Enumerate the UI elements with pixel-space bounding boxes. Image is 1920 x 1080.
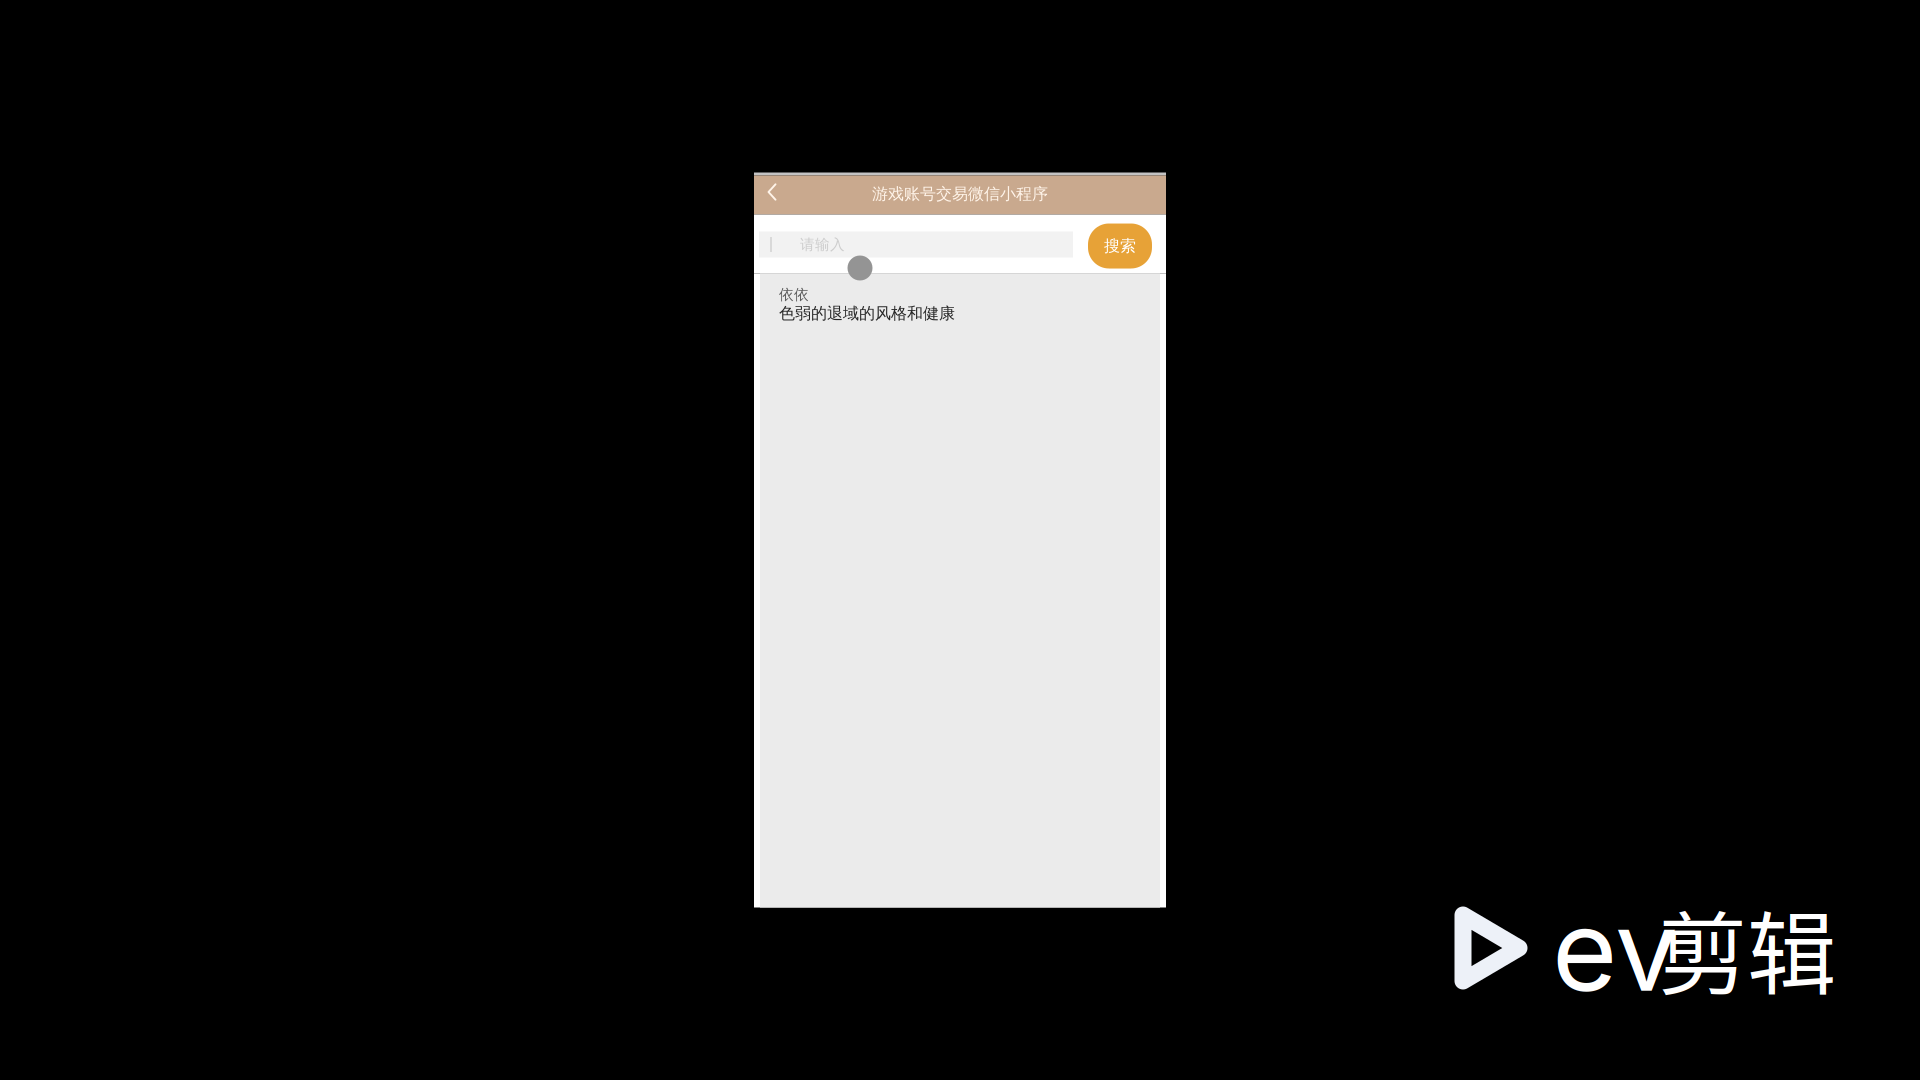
button[interactable]: 搜索 (1088, 223, 1152, 268)
button[interactable]: Back (754, 175, 786, 214)
button[interactable]: Search field (759, 231, 1073, 257)
staticText: 游戏账号交易微信小程序 (872, 184, 1048, 204)
button[interactable]: 依依 (779, 285, 955, 323)
staticText: 依依 (779, 285, 809, 303)
staticText: 色弱的退域的风格和健康 (779, 303, 955, 323)
staticText: ev (1552, 882, 1678, 1018)
staticText: 请输入 (800, 235, 845, 253)
staticText: 搜索 (1104, 236, 1136, 256)
staticText: 剪辑 (1658, 883, 1836, 1013)
